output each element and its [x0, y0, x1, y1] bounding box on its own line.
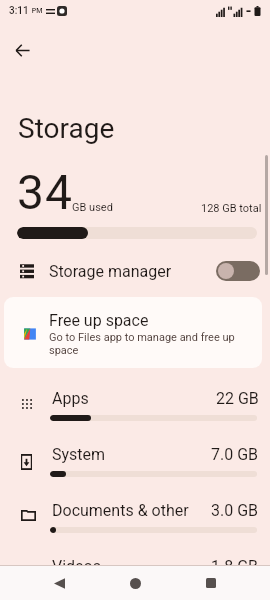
staticText: 3:11	[9, 5, 29, 17]
staticText: 34	[17, 164, 73, 220]
button[interactable]: Recent apps	[194, 566, 228, 600]
staticText: Free up space	[49, 311, 149, 330]
staticText: Apps	[52, 389, 89, 408]
staticText: 7.0 GB	[211, 445, 259, 464]
button[interactable]: Free up space	[4, 297, 262, 368]
staticText: 22 GB	[216, 389, 259, 408]
staticText: 3.0 GB	[211, 501, 259, 520]
button[interactable]: Videos	[0, 559, 270, 600]
staticText: GB used	[72, 201, 113, 214]
button[interactable]: Back	[6, 34, 38, 66]
staticText: Go to Files app to manage and free up sp…	[49, 331, 245, 357]
staticText: 1.8 GB	[211, 557, 259, 576]
staticText: System	[52, 445, 106, 464]
button[interactable]: Apps	[0, 391, 270, 433]
staticText: Storage	[18, 112, 115, 145]
button[interactable]: Documents & other	[0, 503, 270, 545]
staticText: Documents & other	[52, 501, 189, 520]
staticText: 128 GB total	[201, 202, 262, 215]
staticText: PM	[30, 7, 43, 15]
button[interactable]: Storage manager	[0, 250, 270, 292]
staticText: Videos	[52, 557, 101, 576]
button[interactable]: System	[0, 447, 270, 489]
staticText: Storage manager	[49, 262, 172, 281]
button[interactable]: Back	[42, 566, 76, 600]
button[interactable]: Home	[118, 566, 152, 600]
